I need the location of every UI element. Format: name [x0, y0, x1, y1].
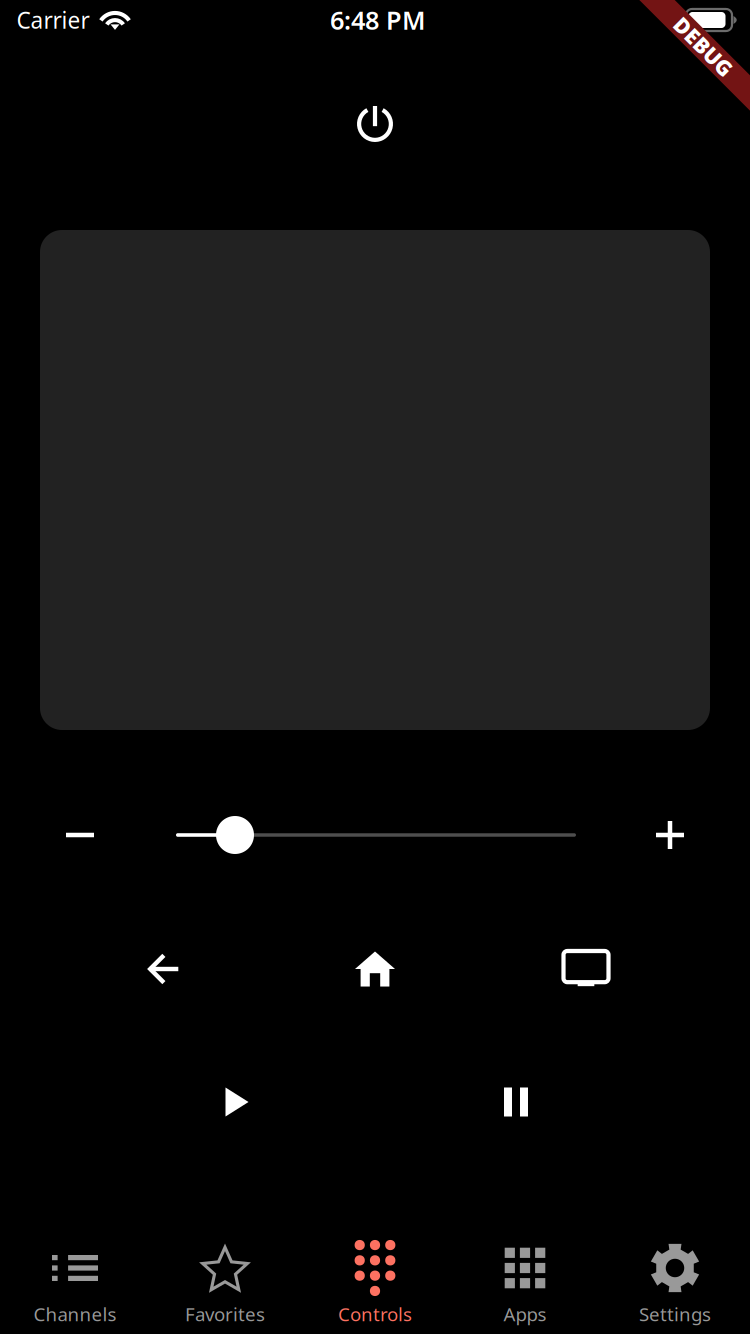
button[interactable]: Home	[329, 927, 421, 1011]
button[interactable]: Controls	[300, 1230, 450, 1334]
button[interactable]: Play	[191, 1060, 283, 1144]
button[interactable]: Volume up	[634, 801, 706, 869]
staticText: Controls	[338, 1302, 412, 1326]
staticText: Carrier	[16, 5, 89, 35]
staticText: Apps	[503, 1302, 546, 1326]
staticText: DEBUG	[666, 32, 740, 61]
staticText: 6:48 PM	[330, 3, 426, 37]
staticText: Favorites	[185, 1302, 265, 1326]
button[interactable]: Apps	[450, 1230, 600, 1334]
staticText: Settings	[639, 1302, 711, 1326]
button[interactable]: Channels	[0, 1230, 150, 1334]
button[interactable]: Power	[333, 82, 417, 166]
button[interactable]: Favorites	[150, 1230, 300, 1334]
button[interactable]: Input source	[540, 927, 632, 1011]
button[interactable]: Volume down	[44, 801, 116, 869]
button[interactable]: Pause	[470, 1060, 562, 1144]
button[interactable]: Settings	[600, 1230, 750, 1334]
staticText: Channels	[33, 1302, 116, 1326]
button[interactable]: Back	[118, 927, 210, 1011]
